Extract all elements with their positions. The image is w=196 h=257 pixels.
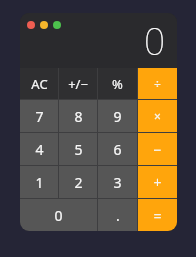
staticText: %: [112, 75, 123, 93]
button[interactable]: ×: [138, 100, 177, 132]
staticText: 2: [74, 173, 83, 192]
button[interactable]: −: [138, 133, 177, 165]
staticText: 7: [35, 107, 44, 126]
staticText: 3: [113, 173, 122, 192]
button[interactable]: 1: [20, 166, 58, 198]
staticText: 9: [113, 107, 122, 126]
staticText: −: [153, 140, 162, 159]
button[interactable]: +: [138, 166, 177, 198]
staticText: +/−: [68, 75, 88, 93]
button[interactable]: AC: [20, 68, 58, 99]
button[interactable]: 9: [98, 100, 137, 132]
button[interactable]: Maximize: [53, 21, 61, 29]
staticText: 6: [113, 140, 122, 159]
staticText: ×: [154, 108, 161, 124]
button[interactable]: %: [98, 68, 137, 99]
button[interactable]: 3: [98, 166, 137, 198]
staticText: 5: [74, 140, 83, 159]
button[interactable]: Minimize: [40, 21, 48, 29]
button[interactable]: 2: [59, 166, 97, 198]
staticText: 4: [35, 140, 44, 159]
button[interactable]: +/−: [59, 68, 97, 99]
staticText: 0: [144, 15, 166, 65]
staticText: ÷: [154, 76, 161, 92]
button[interactable]: 4: [20, 133, 58, 165]
button[interactable]: 8: [59, 100, 97, 132]
staticText: 0: [54, 206, 63, 225]
button[interactable]: 0: [20, 199, 97, 231]
button[interactable]: .: [98, 199, 137, 231]
button[interactable]: =: [138, 199, 177, 231]
staticText: +: [153, 173, 162, 192]
staticText: AC: [31, 75, 48, 93]
staticText: 1: [35, 173, 44, 192]
button[interactable]: ÷: [138, 68, 177, 99]
button[interactable]: 7: [20, 100, 58, 132]
staticText: .: [116, 206, 120, 225]
button[interactable]: 5: [59, 133, 97, 165]
button[interactable]: Close: [27, 21, 35, 29]
staticText: 8: [74, 107, 83, 126]
button[interactable]: 6: [98, 133, 137, 165]
staticText: =: [153, 206, 162, 225]
